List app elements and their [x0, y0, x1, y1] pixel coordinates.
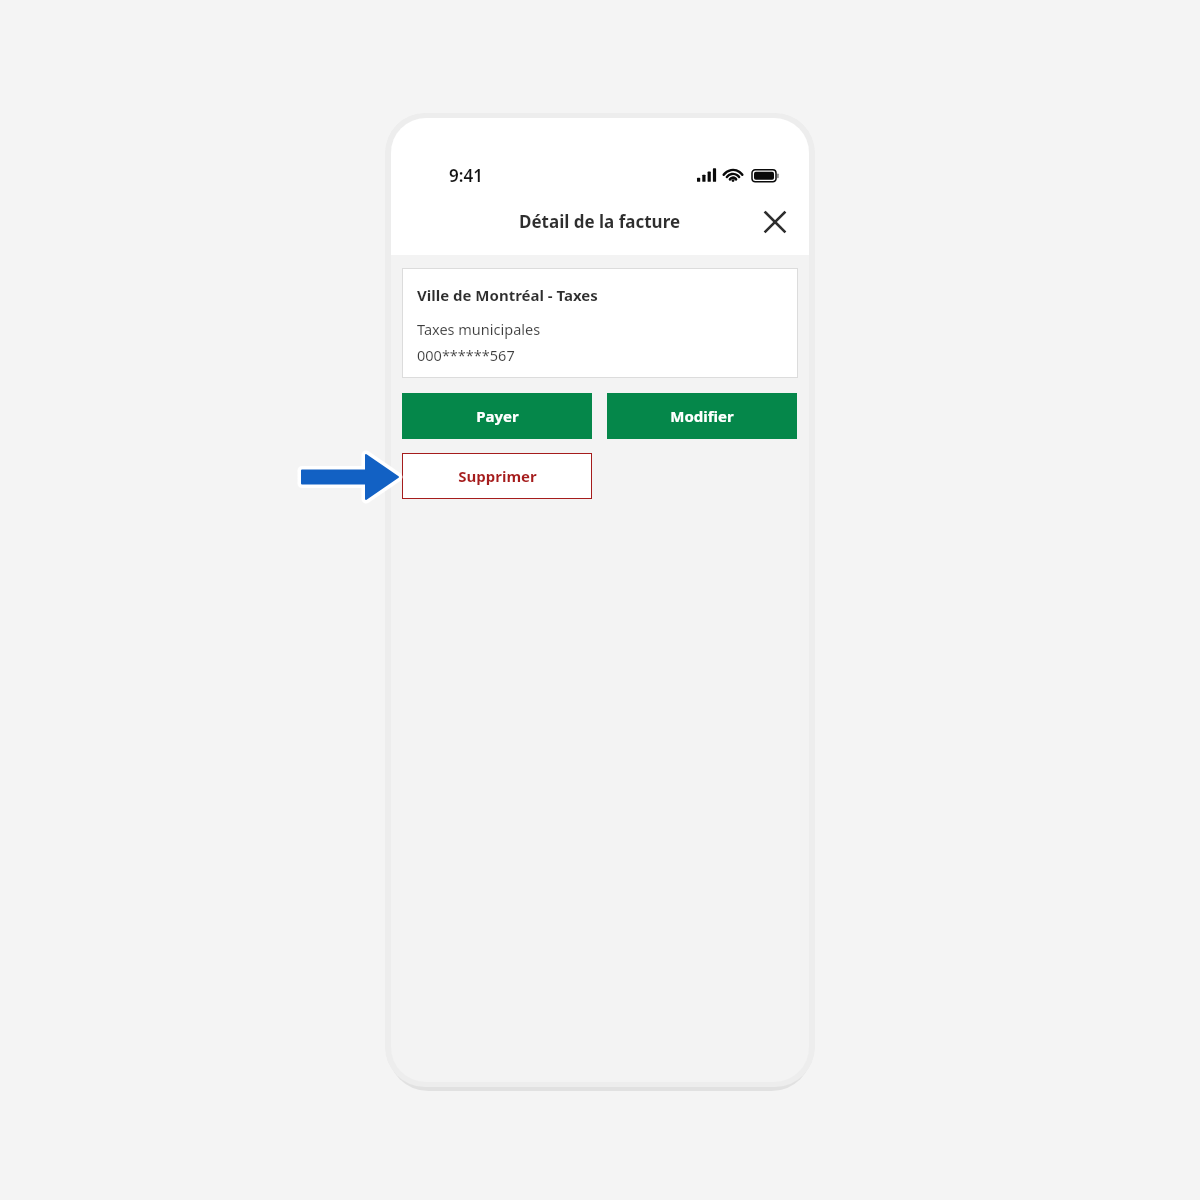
- other: Flèche d'annotation: [288, 442, 408, 512]
- staticText: Ville de Montréal - Taxes: [417, 285, 598, 305]
- staticText: 000******567: [417, 345, 515, 365]
- button[interactable]: Ville de Montréal - Taxes: [402, 268, 798, 378]
- button[interactable]: Payer: [402, 393, 592, 439]
- button[interactable]: Fermer: [753, 200, 797, 244]
- staticText: Payer: [476, 406, 519, 426]
- staticText: Modifier: [670, 406, 734, 426]
- staticText: Supprimer: [458, 466, 537, 486]
- button[interactable]: Supprimer: [402, 453, 592, 499]
- button[interactable]: Modifier: [607, 393, 797, 439]
- staticText: Taxes municipales: [417, 319, 541, 339]
- staticText: 9:41: [449, 164, 483, 187]
- staticText: Détail de la facture: [519, 210, 681, 233]
